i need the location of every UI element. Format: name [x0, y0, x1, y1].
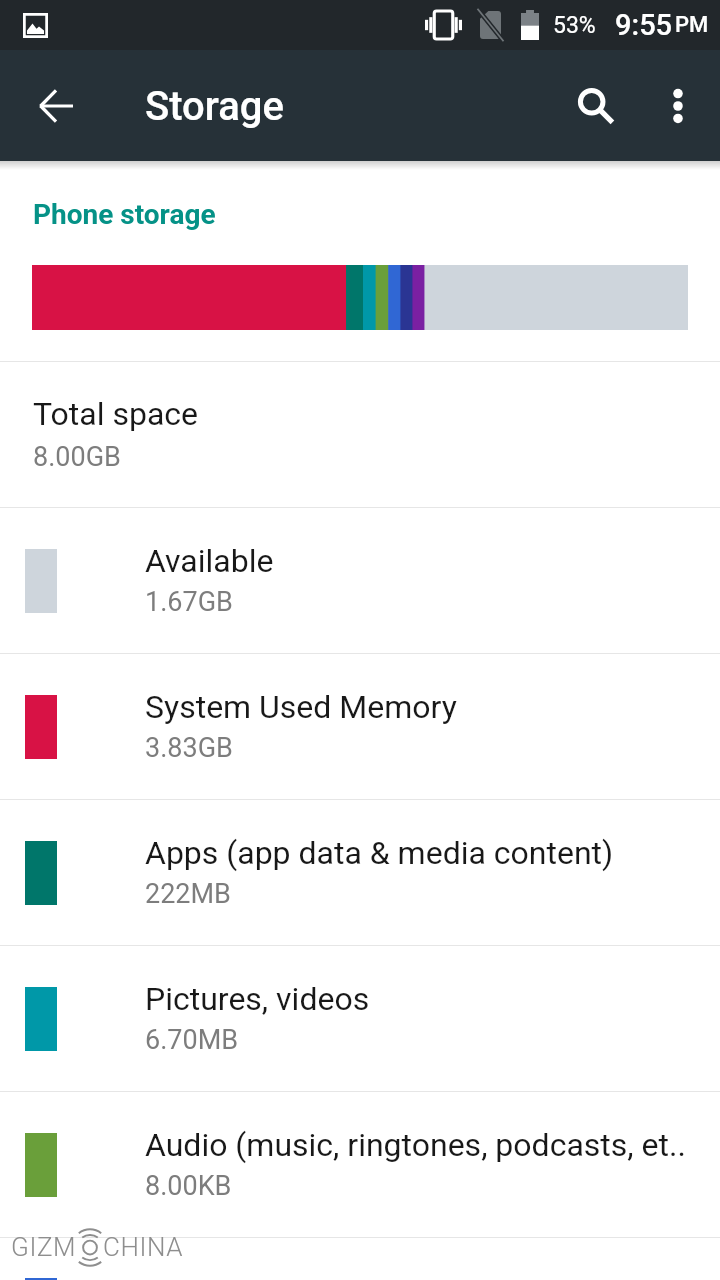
- button[interactable]: System Used Memory: [0, 654, 720, 799]
- button[interactable]: Audio (music, ringtones, podcasts, et..: [0, 1092, 720, 1237]
- staticText: 9:55: [615, 8, 673, 42]
- staticText: 8.00GB: [33, 441, 121, 473]
- staticText: 1.67GB: [145, 586, 233, 618]
- button[interactable]: More options: [644, 74, 708, 138]
- staticText: 53%: [553, 12, 596, 39]
- staticText: 6.70MB: [145, 1024, 239, 1056]
- staticText: Storage: [145, 83, 284, 130]
- staticText: Total space: [33, 395, 198, 433]
- staticText: PM: [675, 12, 709, 38]
- button[interactable]: Total space: [0, 362, 720, 507]
- button[interactable]: Apps (app data & media content): [0, 800, 720, 945]
- staticText: 3.83GB: [145, 732, 233, 764]
- staticText: Apps (app data & media content): [145, 834, 614, 872]
- button[interactable]: Search: [564, 74, 628, 138]
- staticText: CHINA: [103, 1232, 184, 1262]
- staticText: System Used Memory: [145, 688, 457, 726]
- button[interactable]: Back: [24, 74, 88, 138]
- staticText: 8.00KB: [145, 1170, 232, 1202]
- button[interactable]: Pictures, videos: [0, 946, 720, 1091]
- staticText: 222MB: [145, 878, 231, 910]
- staticText: GIZM: [11, 1232, 77, 1262]
- staticText: Audio (music, ringtones, podcasts, et..: [145, 1126, 686, 1164]
- staticText: Available: [145, 542, 274, 580]
- staticText: Phone storage: [33, 198, 216, 231]
- button[interactable]: Available: [0, 508, 720, 653]
- button[interactable]: Downloads: [0, 1238, 720, 1280]
- staticText: Pictures, videos: [145, 980, 370, 1018]
